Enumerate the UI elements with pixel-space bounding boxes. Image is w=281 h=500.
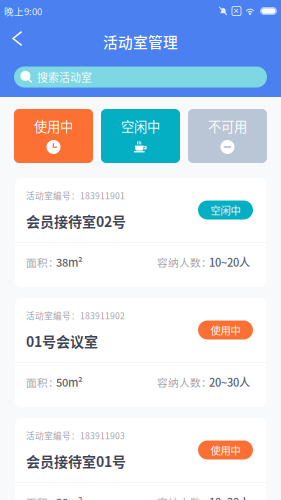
staticText: 10~20人 — [209, 494, 250, 500]
staticText: 容纳人数： — [157, 374, 212, 390]
button[interactable]: 活动室编号：183911902 — [15, 298, 266, 407]
staticText: 会员接待室02号 — [26, 211, 126, 231]
button[interactable]: 使用中 — [14, 109, 93, 163]
staticText: 活动室编号：183911902 — [26, 309, 125, 322]
staticText: 10~20人 — [209, 254, 250, 270]
staticText: 搜索活动室 — [37, 69, 92, 85]
staticText: 使用中 — [210, 322, 240, 338]
staticText: 面积： — [26, 254, 59, 270]
staticText: 容纳人数： — [157, 254, 212, 270]
staticText: 50m² — [56, 374, 83, 390]
staticText: 不可用 — [208, 116, 247, 136]
button[interactable]: 活动室编号：183911901 — [15, 178, 266, 287]
staticText: 面积： — [26, 374, 59, 390]
staticText: 空闲中 — [210, 202, 240, 218]
staticText: 面积： — [26, 494, 59, 500]
staticText: 01号会议室 — [26, 331, 98, 351]
button[interactable]: 空闲中 — [101, 109, 180, 163]
staticText: 容纳人数： — [157, 494, 212, 500]
staticText: 晚上9:00 — [4, 4, 42, 18]
staticText: 20~30人 — [209, 374, 250, 390]
staticText: 空闲中 — [121, 116, 160, 136]
staticText: 使用中 — [210, 442, 240, 458]
button[interactable]: 活动室编号：183911903 — [15, 418, 266, 500]
staticText: 38m² — [56, 254, 83, 270]
staticText: 会员接待室01号 — [26, 451, 126, 471]
staticText: 活动室编号：183911903 — [26, 429, 125, 442]
button[interactable]: 不可用 — [188, 109, 267, 163]
staticText: 活动室编号：183911901 — [26, 189, 125, 202]
staticText: 活动室管理 — [103, 31, 178, 52]
staticText: 38m² — [56, 494, 83, 500]
button[interactable]: 搜索活动室 — [14, 66, 267, 87]
staticText: 使用中 — [34, 116, 73, 136]
button[interactable]: Back — [0, 18, 34, 64]
